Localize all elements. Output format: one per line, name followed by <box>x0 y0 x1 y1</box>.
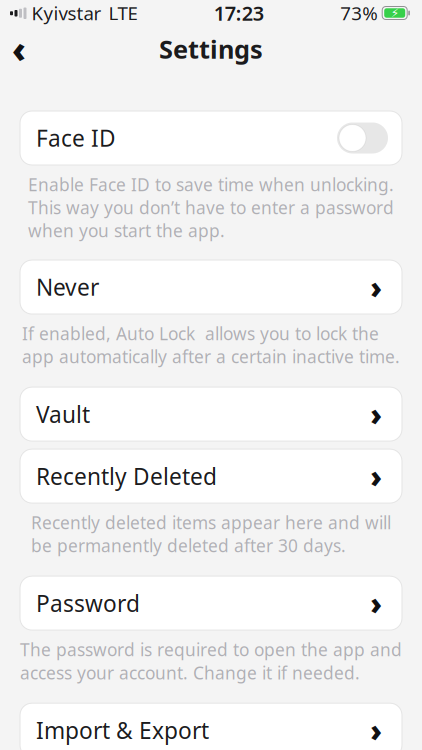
staticText: Enable Face ID to save time when unlocki… <box>28 173 394 242</box>
staticText: If enabled, Auto Lock allows you to lock… <box>22 322 400 368</box>
staticText: The password is required to open the app… <box>20 638 402 684</box>
staticText: ‹ <box>12 26 26 72</box>
button[interactable]: Never <box>20 260 402 314</box>
staticText: Recently Deleted <box>36 461 217 491</box>
staticText: Settings <box>159 32 263 66</box>
staticText: Import & Export <box>36 715 209 745</box>
button[interactable]: Password <box>20 576 402 630</box>
staticText: Face ID <box>36 123 116 153</box>
button[interactable]: Face ID <box>20 111 402 165</box>
staticText: Recently deleted items appear here and w… <box>31 511 391 557</box>
button[interactable]: Import & Export <box>20 703 402 750</box>
button[interactable]: Recently Deleted <box>20 449 402 503</box>
staticText: › <box>370 395 382 434</box>
staticText: Password <box>36 588 140 618</box>
button[interactable]: Back <box>0 28 28 70</box>
staticText: Never <box>36 272 99 302</box>
staticText: Kyivstar <box>31 1 101 25</box>
staticText: › <box>370 711 382 750</box>
button[interactable]: Vault <box>20 387 402 441</box>
staticText: Vault <box>36 399 90 429</box>
staticText: › <box>370 584 382 623</box>
staticText: 73% <box>340 1 378 25</box>
staticText: ⚡︎ <box>391 6 399 20</box>
staticText: LTE <box>108 1 137 25</box>
staticText: 17:23 <box>214 0 264 26</box>
staticText: › <box>370 457 382 496</box>
staticText: › <box>370 268 382 307</box>
